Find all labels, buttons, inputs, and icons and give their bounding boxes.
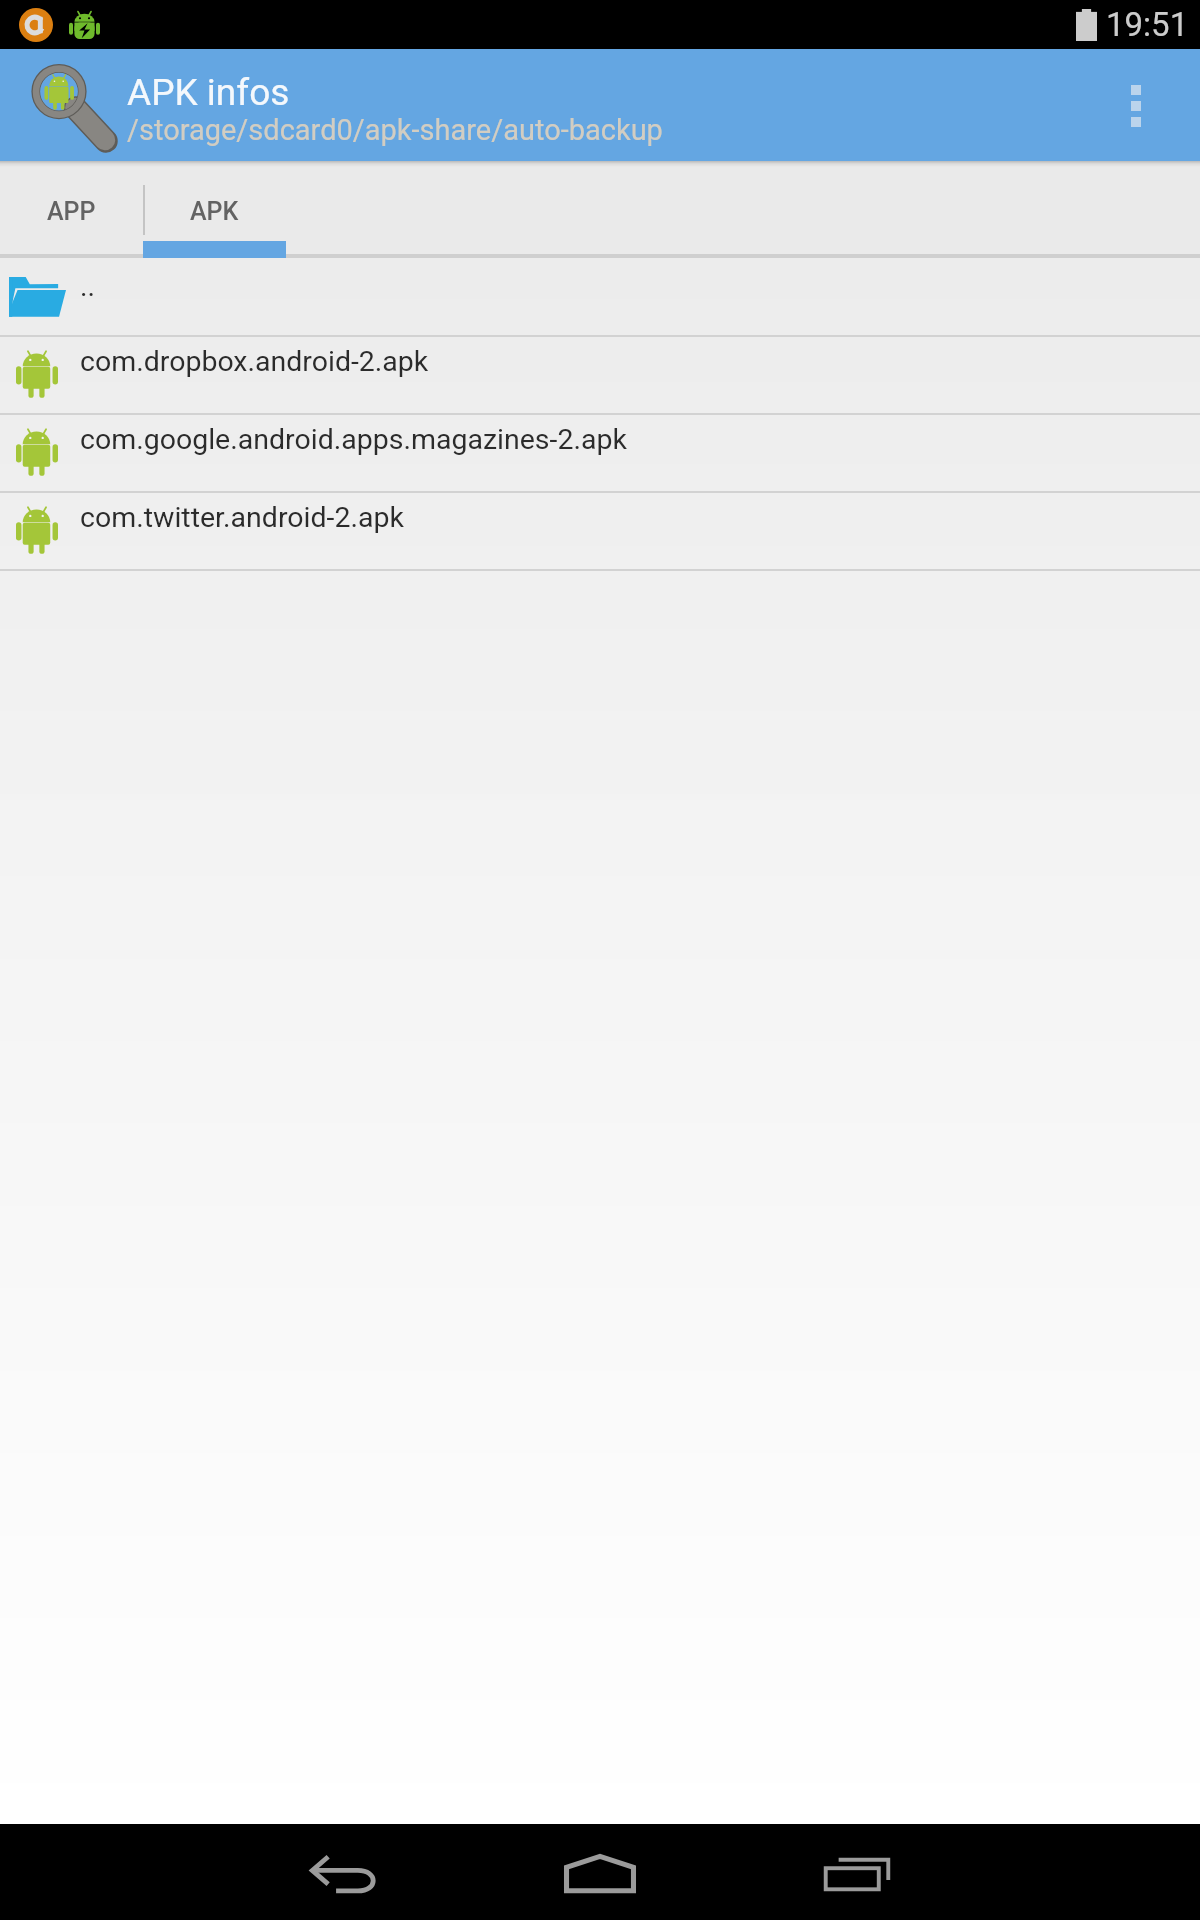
button[interactable]: APK — [143, 161, 286, 258]
button[interactable]: APP — [0, 161, 143, 258]
staticText: .. — [80, 270, 96, 303]
button[interactable]: com.dropbox.android-2.apk — [0, 337, 1200, 413]
button[interactable]: More options — [1086, 49, 1192, 161]
button[interactable]: Back — [264, 1824, 424, 1920]
staticText: com.google.android.apps.magazines-2.apk — [80, 423, 627, 456]
staticText: APK infos — [127, 71, 290, 114]
button[interactable]: com.twitter.android-2.apk — [0, 493, 1200, 569]
staticText: com.dropbox.android-2.apk — [80, 345, 429, 378]
button[interactable]: Home — [520, 1824, 680, 1920]
staticText: APP — [47, 197, 96, 226]
staticText: APK — [190, 197, 239, 226]
button[interactable]: com.google.android.apps.magazines-2.apk — [0, 415, 1200, 491]
button[interactable]: Recent apps — [777, 1824, 937, 1920]
staticText: com.twitter.android-2.apk — [80, 501, 404, 534]
staticText: 19:51 — [1106, 5, 1189, 44]
staticText: /storage/sdcard0/apk-share/auto-backup — [127, 113, 663, 147]
button[interactable]: .. — [0, 258, 1200, 335]
button[interactable]: APK infos — [0, 49, 1200, 161]
